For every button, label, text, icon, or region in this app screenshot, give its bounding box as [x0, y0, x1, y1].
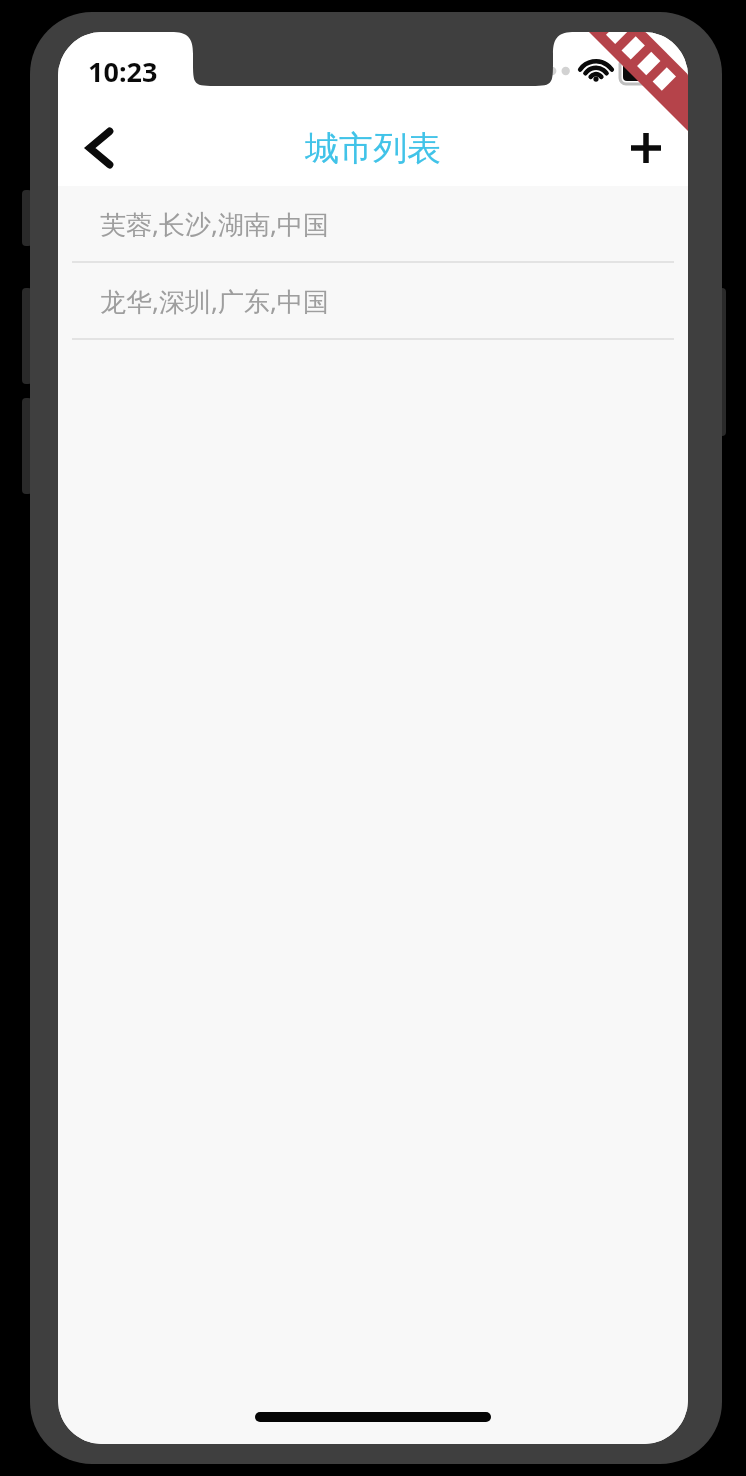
- staticText: 龙华,深圳,广东,中国: [100, 283, 329, 319]
- button[interactable]: 龙华,深圳,广东,中国: [58, 263, 688, 340]
- staticText: 城市列表: [305, 127, 441, 170]
- button[interactable]: 芙蓉,长沙,湖南,中国: [58, 186, 688, 263]
- button[interactable]: Back: [58, 110, 142, 186]
- staticText: 芙蓉,长沙,湖南,中国: [100, 206, 329, 242]
- staticText: 10:23: [88, 53, 158, 90]
- button[interactable]: Add city: [604, 110, 688, 186]
